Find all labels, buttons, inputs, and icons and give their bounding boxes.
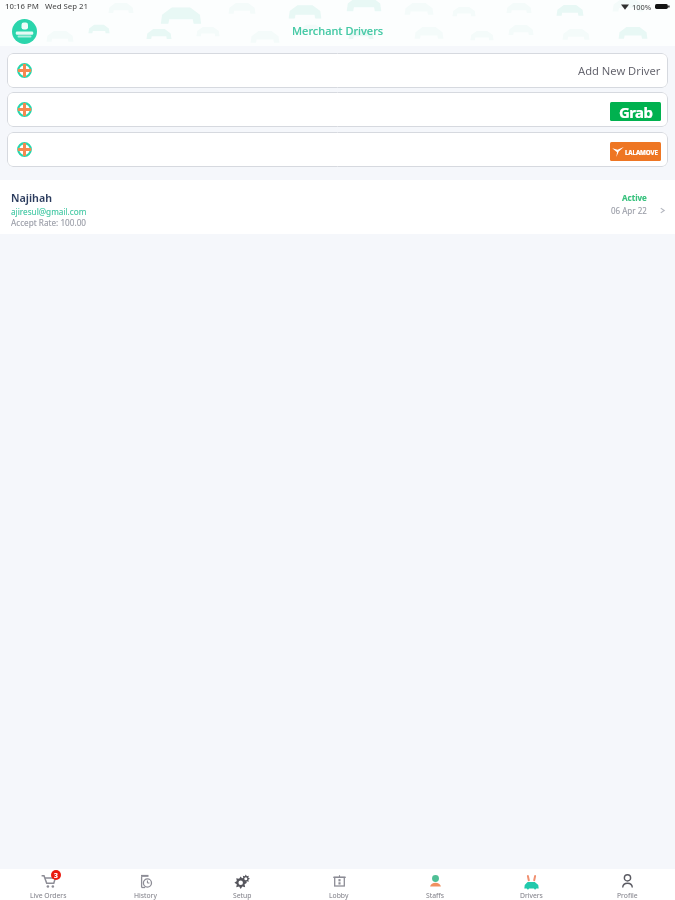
staticText: Add New Driver: [578, 63, 661, 78]
button[interactable]: Staffs: [387, 869, 483, 900]
staticText: Lobby: [329, 891, 349, 900]
staticText: Drivers: [520, 891, 543, 900]
button[interactable]: Lobby: [291, 869, 387, 900]
staticText: Grab: [619, 102, 653, 121]
button[interactable]: History: [97, 869, 194, 900]
staticText: ajiresul@gmail.com: [11, 206, 87, 217]
staticText: 100%: [632, 2, 652, 12]
button[interactable]: Drivers: [483, 869, 579, 900]
staticText: Merchant Drivers: [292, 23, 384, 38]
staticText: 06 Apr 22: [611, 205, 647, 216]
staticText: Najihah: [11, 191, 53, 205]
staticText: Staffs: [426, 891, 444, 900]
staticText: 10:16 PM Wed Sep 21: [5, 1, 89, 12]
staticText: History: [134, 891, 157, 900]
staticText: Accept Rate: 100.00: [11, 217, 87, 228]
button[interactable]: Add New Driver: [7, 53, 668, 88]
staticText: LALAMOVE: [625, 148, 658, 156]
button[interactable]: Profile: [579, 869, 675, 900]
button[interactable]: Najihah: [0, 180, 675, 234]
staticText: Setup: [233, 891, 252, 900]
staticText: Profile: [617, 891, 638, 900]
button[interactable]: 3: [0, 869, 97, 900]
staticText: Live Orders: [30, 891, 67, 900]
button[interactable]: Link Lalamove: [7, 132, 668, 167]
button[interactable]: Setup: [194, 869, 291, 900]
button[interactable]: Link Grab: [7, 92, 668, 127]
button[interactable]: App logo: [12, 19, 37, 44]
staticText: Active: [622, 192, 647, 203]
staticText: 3: [54, 871, 58, 880]
